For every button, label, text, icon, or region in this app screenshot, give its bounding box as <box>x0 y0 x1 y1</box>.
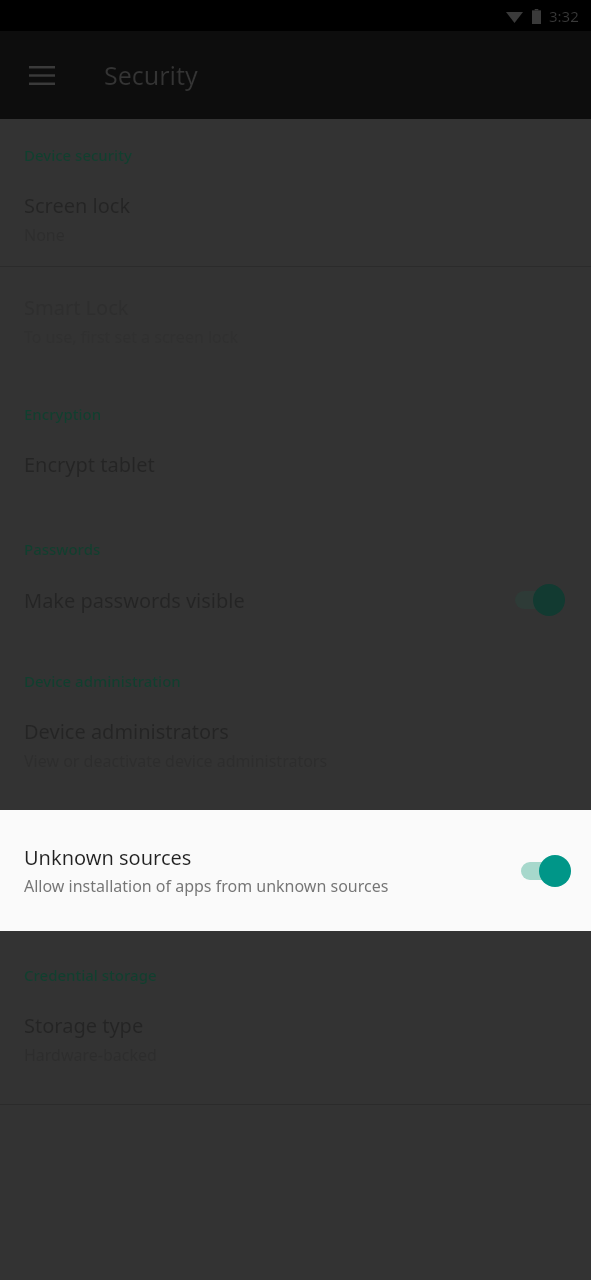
staticText: Unknown sources <box>24 844 192 871</box>
button[interactable]: Unknown sources <box>0 810 591 931</box>
staticText: Allow installation of apps from unknown … <box>24 875 402 897</box>
staticText: Device security <box>24 145 132 165</box>
staticText: Encryption <box>24 404 102 424</box>
staticText: 3:32 <box>549 6 579 26</box>
staticText: Security <box>104 58 198 92</box>
staticText: Make passwords visible <box>24 587 513 614</box>
staticText: Device administration <box>24 671 181 691</box>
staticText: Credential storage <box>24 965 157 985</box>
staticText: Storage type <box>24 1012 144 1039</box>
button[interactable]: Make passwords visible <box>0 559 591 641</box>
staticText: Device administrators <box>24 718 229 745</box>
staticText: Encrypt tablet <box>24 451 155 478</box>
staticText: Passwords <box>24 539 101 559</box>
staticText: Screen lock <box>24 192 131 219</box>
button[interactable]: Open navigation menu <box>18 51 66 99</box>
